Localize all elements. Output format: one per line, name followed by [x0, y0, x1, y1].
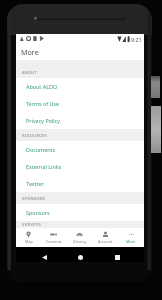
staticText: Documents	[26, 146, 56, 153]
staticText: SURVEYS	[22, 222, 41, 227]
staticText: ABOUT	[22, 70, 37, 75]
staticText: Driving	[73, 239, 86, 244]
button[interactable]: Sponsors	[16, 204, 144, 221]
staticText: 9:21	[131, 36, 142, 43]
staticText: Sponsors	[26, 209, 50, 216]
button[interactable]: External Links	[16, 158, 144, 175]
button[interactable]: Cameras	[41, 228, 66, 247]
staticText: Cameras	[46, 239, 62, 244]
staticText: SPONSORS	[22, 196, 46, 201]
button[interactable]: Account	[92, 228, 118, 247]
button[interactable]: Privacy Policy	[16, 112, 144, 129]
staticText: RESOURCES	[22, 133, 48, 138]
staticText: More	[21, 47, 39, 57]
button[interactable]: Terms of Use	[16, 95, 144, 112]
button[interactable]: Documents	[16, 141, 144, 158]
staticText: External Links	[26, 163, 62, 170]
staticText: Terms of Use	[26, 100, 59, 107]
staticText: About ALDO	[26, 83, 58, 90]
staticText: Map	[25, 239, 33, 244]
button[interactable]: Driving	[66, 228, 92, 247]
button[interactable]: More	[118, 228, 144, 247]
button[interactable]: Recent apps	[111, 251, 123, 263]
staticText: Twitter	[26, 180, 44, 187]
button[interactable]: Twitter	[16, 175, 144, 192]
staticText: Privacy Policy	[26, 117, 61, 124]
staticText: More	[126, 239, 136, 244]
button[interactable]: About ALDO	[16, 78, 144, 95]
button[interactable]: Map	[16, 228, 41, 247]
button[interactable]: Back	[38, 251, 50, 263]
staticText: Account	[98, 239, 113, 244]
button[interactable]: Home	[74, 251, 86, 263]
